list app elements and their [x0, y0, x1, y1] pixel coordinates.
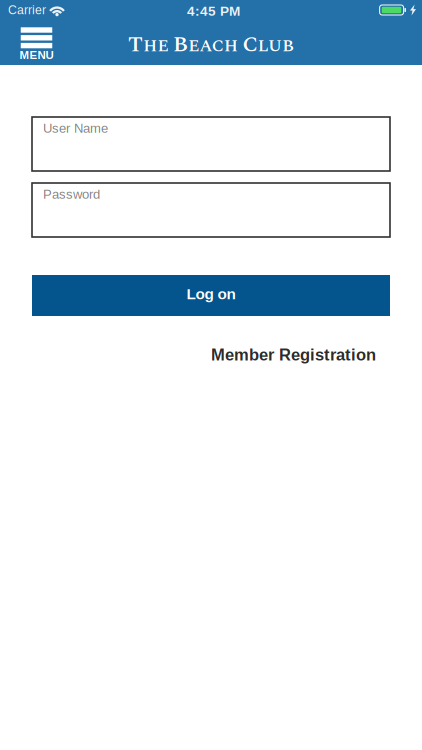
- button[interactable]: Log on: [32, 275, 390, 316]
- staticText: User Name: [43, 121, 108, 136]
- button[interactable]: Menu: [17, 20, 55, 65]
- staticText: Password: [43, 187, 100, 202]
- staticText: 4:45 PM: [187, 3, 240, 19]
- button[interactable]: Member Registration: [211, 345, 376, 364]
- staticText: MENU: [19, 48, 53, 61]
- staticText: Log on: [186, 285, 235, 302]
- staticText: Member Registration: [211, 345, 376, 364]
- staticText: Carrier: [8, 3, 46, 17]
- staticText: THE BEACH CLUB: [128, 29, 294, 61]
